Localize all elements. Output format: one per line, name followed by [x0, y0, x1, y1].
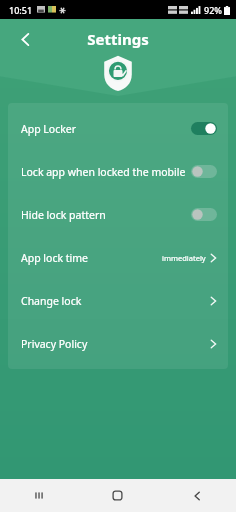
button[interactable]: Change lock	[8, 279, 228, 322]
button[interactable]: App Locker	[8, 107, 228, 150]
button[interactable]: Back	[157, 479, 236, 512]
button[interactable]: Home	[78, 479, 157, 512]
staticText: App Locker	[21, 122, 191, 136]
staticText: Lock app when locked the mobile	[21, 165, 191, 179]
staticText: App lock time	[21, 251, 162, 265]
staticText: Settings	[87, 29, 149, 49]
staticText: Change lock	[21, 294, 210, 308]
staticText: Privacy Policy	[21, 337, 210, 351]
staticText: 10:51	[9, 4, 33, 16]
staticText: immediately	[162, 253, 206, 263]
button[interactable]: Off	[191, 165, 217, 178]
button[interactable]: On	[191, 122, 217, 135]
staticText: Hide lock pattern	[21, 208, 191, 222]
button[interactable]: Recent apps	[0, 479, 78, 512]
staticText: 92%	[204, 4, 222, 16]
button[interactable]: Lock app when locked the mobile	[8, 150, 228, 193]
button[interactable]: Privacy Policy	[8, 322, 228, 365]
button[interactable]: Back	[8, 22, 42, 56]
button[interactable]: Off	[191, 208, 217, 221]
button[interactable]: Hide lock pattern	[8, 193, 228, 236]
button[interactable]: App lock time	[8, 236, 228, 279]
